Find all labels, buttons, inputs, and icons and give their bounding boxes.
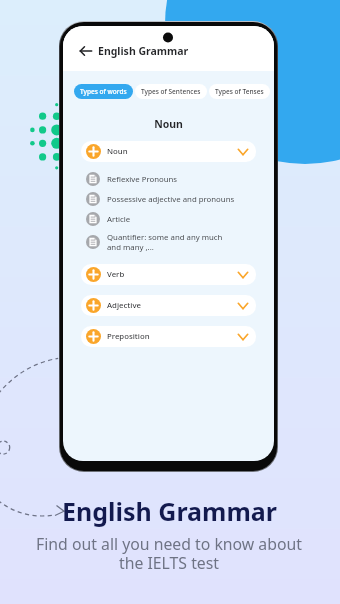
staticText: English Grammar: [62, 494, 277, 528]
staticText: Find out all you need to know about the …: [36, 533, 302, 574]
staticText: Noun: [107, 146, 128, 157]
staticText: Noun: [63, 117, 274, 131]
staticText: Possessive adjective and pronouns: [107, 194, 235, 205]
staticText: Adjective: [107, 300, 142, 311]
staticText: Article: [107, 214, 131, 225]
button[interactable]: Types of Tenses: [209, 84, 270, 99]
staticText: Quantifier: some and any much and many ,…: [107, 232, 223, 252]
button[interactable]: Reflexive Pronouns: [86, 169, 254, 189]
staticText: Types of Sentences: [141, 87, 201, 96]
button[interactable]: Quantifier: some and any much and many ,…: [86, 229, 254, 254]
staticText: Types of words: [80, 87, 127, 96]
staticText: Types of Tenses: [215, 87, 264, 96]
button[interactable]: Types of Sentences: [135, 84, 207, 99]
button[interactable]: Verb: [81, 264, 256, 285]
button[interactable]: Back: [79, 44, 93, 58]
staticText: English Grammar: [98, 44, 189, 58]
staticText: Verb: [107, 269, 125, 280]
button[interactable]: Types of words: [74, 84, 133, 99]
button[interactable]: Adjective: [81, 295, 256, 316]
button[interactable]: Article: [86, 209, 254, 229]
staticText: Preposition: [107, 331, 150, 342]
button[interactable]: Preposition: [81, 326, 256, 347]
button[interactable]: Possessive adjective and pronouns: [86, 189, 254, 209]
staticText: Reflexive Pronouns: [107, 174, 178, 185]
button[interactable]: Noun: [81, 141, 256, 162]
